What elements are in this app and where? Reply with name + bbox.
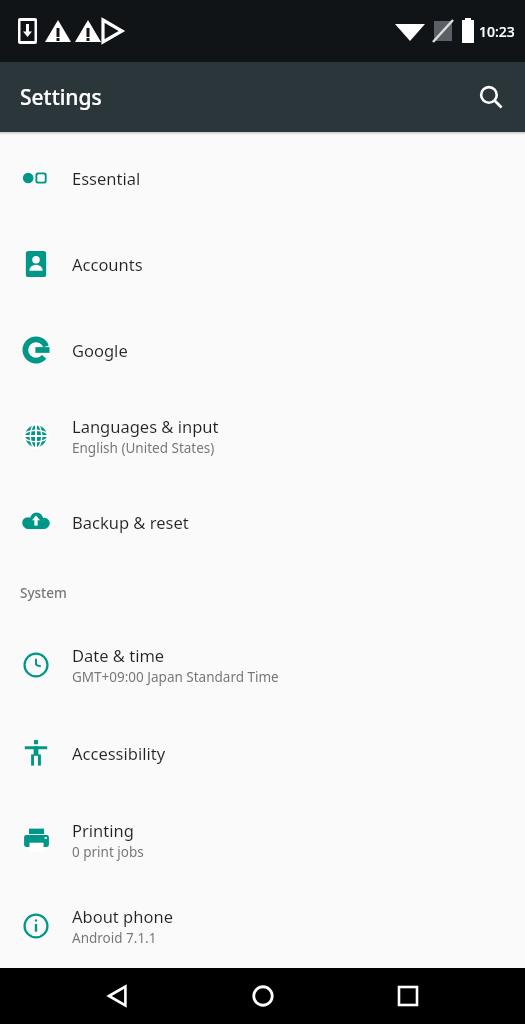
button[interactable]: Accounts <box>0 221 525 307</box>
staticText: About phone <box>72 905 173 927</box>
staticText: Accessibility <box>72 742 166 764</box>
staticText: Backup & reset <box>72 511 189 533</box>
staticText: Accounts <box>72 253 143 275</box>
staticText: Date & time <box>72 644 165 666</box>
button[interactable]: Backup & reset <box>0 479 525 565</box>
staticText: English (United States) <box>72 439 215 457</box>
button[interactable]: Home <box>235 968 291 1024</box>
button[interactable]: Essential <box>0 135 525 221</box>
staticText: Android 7.1.1 <box>72 929 157 947</box>
staticText: 10:23 <box>479 22 515 41</box>
staticText: Languages & input <box>72 415 219 437</box>
button[interactable]: Google <box>0 307 525 393</box>
staticText: System <box>20 584 67 602</box>
button[interactable]: Languages & input <box>0 393 525 479</box>
button[interactable]: Recent apps <box>380 968 436 1024</box>
button[interactable]: Back <box>89 968 145 1024</box>
button[interactable]: Accessibility <box>0 709 525 797</box>
button[interactable]: Date & time <box>0 621 525 709</box>
staticText: Printing <box>72 819 134 841</box>
button[interactable]: About phone <box>0 883 525 968</box>
staticText: Essential <box>72 167 141 189</box>
button[interactable]: Printing <box>0 797 525 883</box>
staticText: 0 print jobs <box>72 843 144 861</box>
staticText: Settings <box>20 83 102 112</box>
staticText: Google <box>72 339 128 361</box>
button[interactable]: Search <box>467 73 515 121</box>
staticText: GMT+09:00 Japan Standard Time <box>72 668 279 686</box>
